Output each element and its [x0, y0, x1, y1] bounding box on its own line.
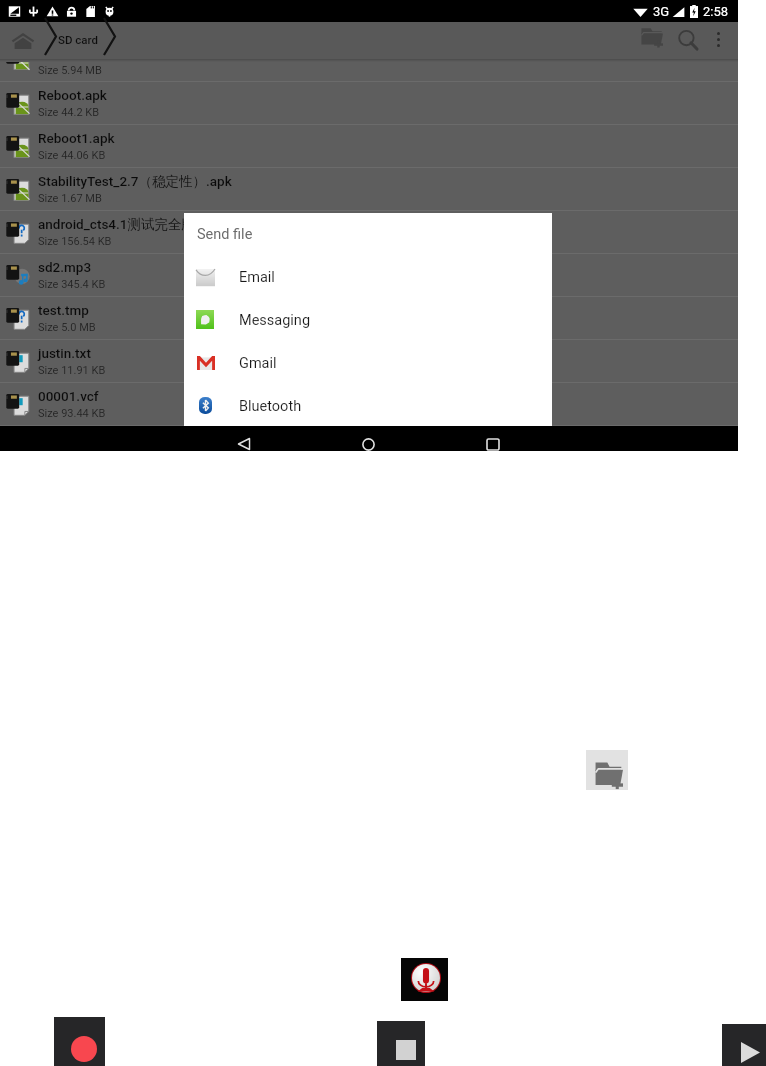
staticText: Email	[239, 269, 275, 286]
button[interactable]: justin.txt	[0, 340, 738, 382]
button[interactable]: Search	[671, 22, 707, 59]
button[interactable]: Messaging	[184, 299, 552, 342]
staticText: StabilityTest_2.7（稳定性）.apk	[38, 173, 232, 190]
staticText: Size 44.2 KB	[38, 106, 100, 119]
staticText: Size 5.94 MB	[38, 64, 102, 77]
staticText: Reboot.apk	[38, 87, 107, 103]
staticText: Size 44.06 KB	[38, 149, 106, 162]
staticText: justin.txt	[38, 345, 91, 361]
staticText: 00001.vcf	[38, 388, 99, 404]
button[interactable]: 00001.vcf	[0, 383, 738, 425]
staticText: test.tmp	[38, 302, 89, 318]
button[interactable]: More options	[707, 22, 735, 59]
staticText: Size 5.0 MB	[38, 321, 96, 334]
button[interactable]: Reboot1.apk	[0, 125, 738, 167]
button[interactable]: Back	[214, 426, 274, 451]
button[interactable]: Home	[3, 22, 45, 59]
button[interactable]: New folder	[586, 750, 628, 790]
button[interactable]: Record	[54, 1017, 105, 1066]
button[interactable]: StabilityTest_2.7（稳定性）.apk	[0, 168, 738, 210]
staticText: Send file	[197, 226, 253, 243]
staticText: SD card	[58, 33, 99, 46]
staticText: Size 11.91 KB	[38, 364, 106, 377]
staticText: Messaging	[239, 312, 311, 329]
button[interactable]: Reboot.apk	[0, 82, 738, 124]
button[interactable]: sd2.mp3	[0, 254, 738, 296]
button[interactable]: android_cts4.1测试完全版.apk	[0, 211, 738, 253]
button[interactable]: Play	[722, 1024, 766, 1066]
staticText: Size 156.54 KB	[38, 235, 112, 248]
staticText: sd2.mp3	[38, 259, 92, 275]
staticText: Bluetooth	[239, 398, 302, 415]
button[interactable]: Gmail	[184, 342, 552, 385]
staticText: Size 93.44 KB	[38, 407, 106, 420]
button[interactable]: Voice recorder	[401, 958, 448, 1001]
button[interactable]: test.tmp	[0, 297, 738, 339]
button[interactable]: SD card	[57, 21, 99, 58]
button[interactable]: Bluetooth	[184, 385, 552, 428]
button[interactable]: Recent apps	[463, 426, 523, 451]
staticText: Size 345.4 KB	[38, 278, 106, 291]
button[interactable]: Stop	[377, 1021, 425, 1066]
button[interactable]: Home	[339, 426, 399, 451]
staticText: 2:58	[703, 4, 729, 19]
staticText: Reboot1.apk	[38, 130, 115, 146]
button[interactable]: New folder	[633, 22, 671, 59]
staticText: android_cts4.1测试完全版.apk	[38, 216, 221, 233]
button[interactable]: Size 5.94 MB	[0, 62, 738, 81]
staticText: 3G	[653, 4, 670, 19]
staticText: Size 1.67 MB	[38, 192, 102, 205]
button[interactable]: Email	[184, 256, 552, 299]
staticText: Gmail	[239, 355, 277, 372]
